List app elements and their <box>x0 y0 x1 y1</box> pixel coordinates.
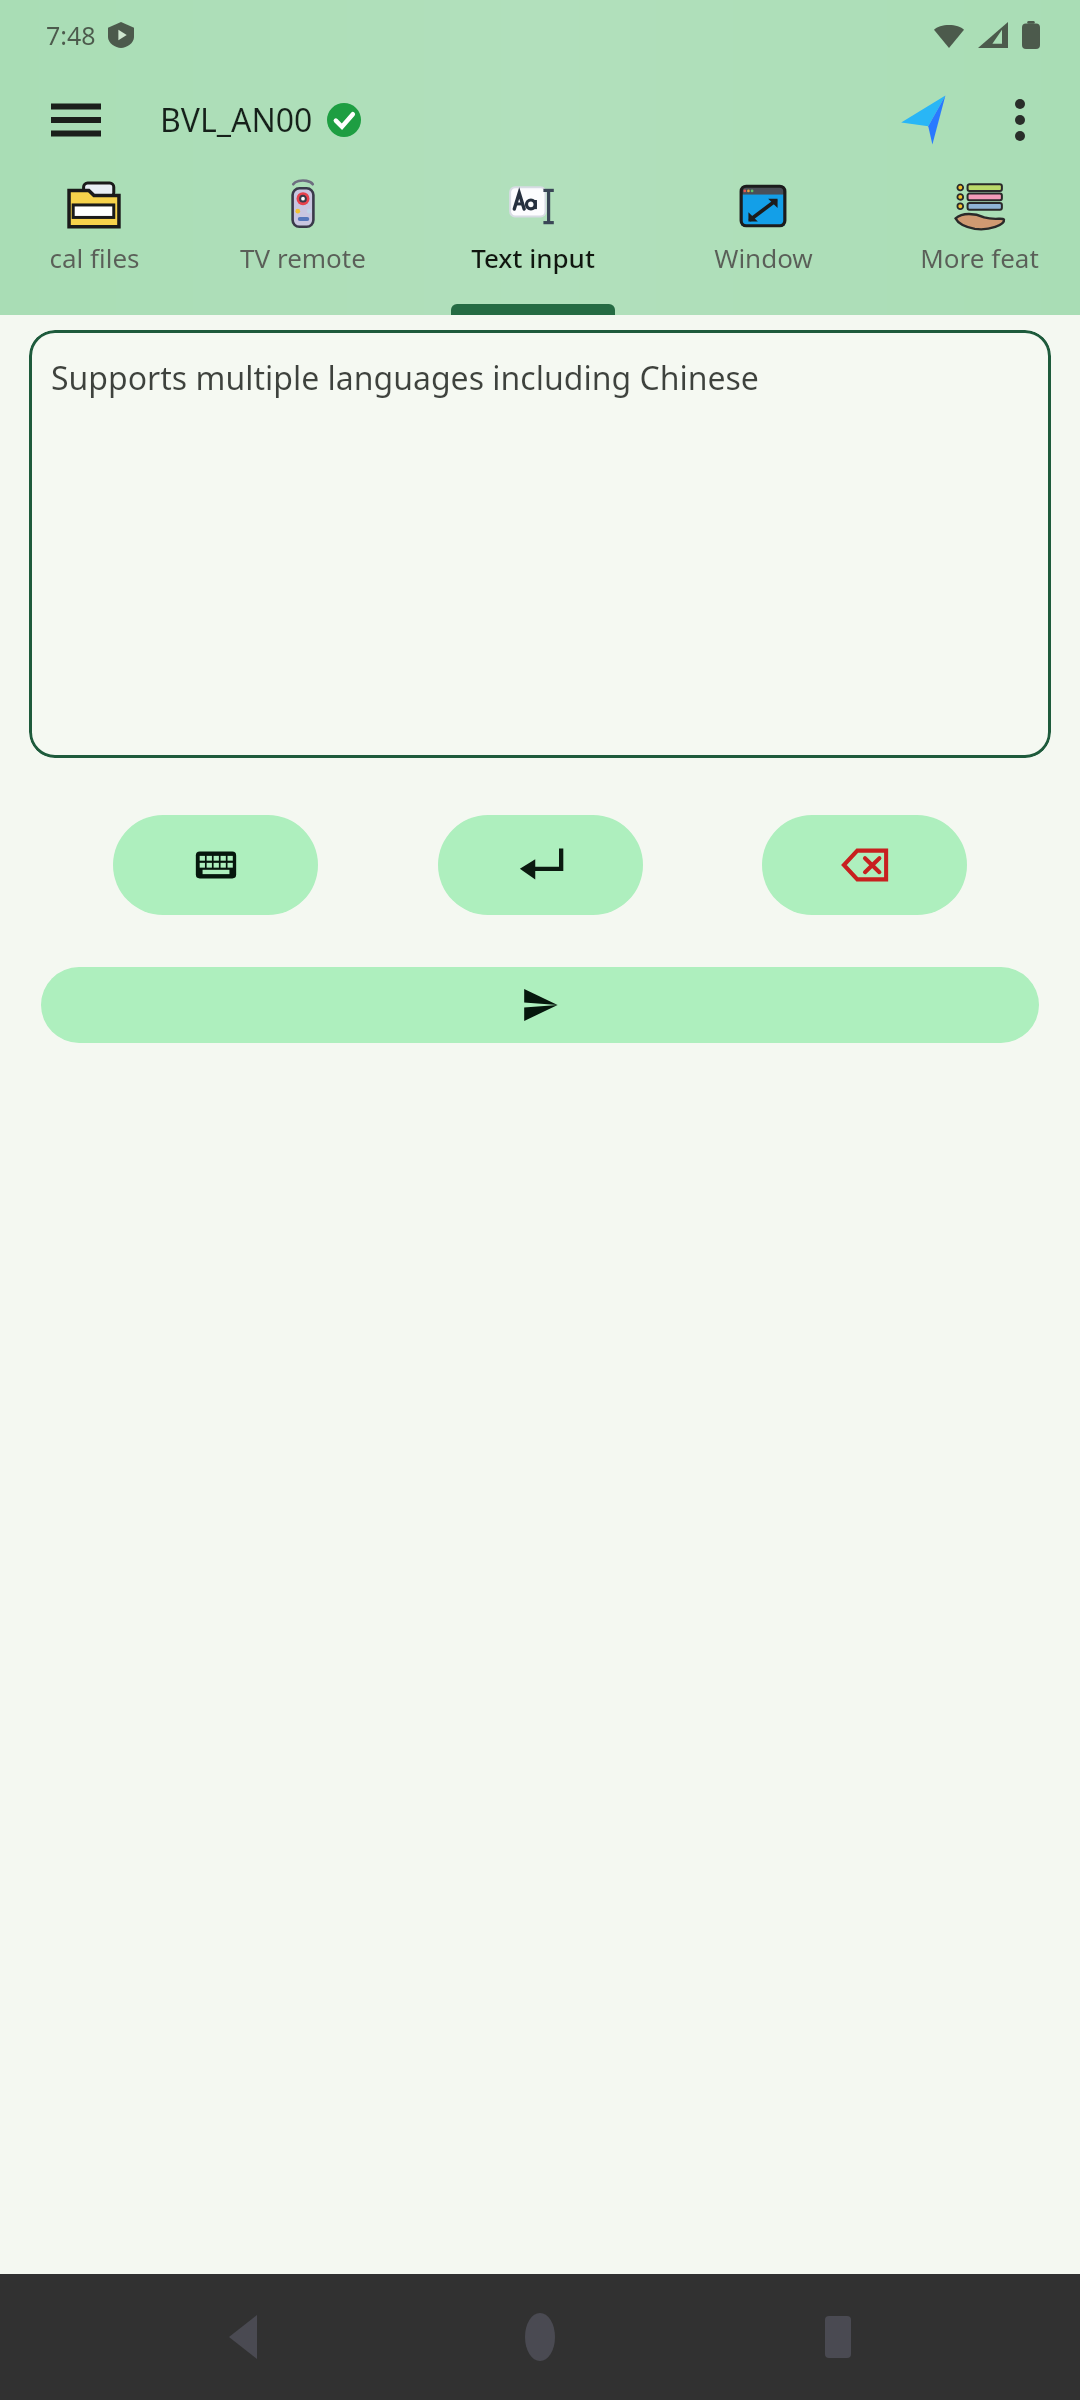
staticText: More feat <box>920 240 1039 275</box>
button[interactable]: Navigate <box>884 82 960 158</box>
staticText: BVL_AN00 <box>160 98 313 142</box>
button[interactable]: Recents <box>783 2282 893 2392</box>
staticText: TV remote <box>240 240 366 275</box>
button[interactable]: Text input <box>418 170 648 315</box>
button[interactable]: More feat <box>878 170 1080 315</box>
staticText: Supports multiple languages including Ch… <box>51 356 759 400</box>
button[interactable]: Backspace <box>762 815 967 915</box>
staticText: Window <box>714 240 813 275</box>
staticText: Text input <box>471 240 595 275</box>
staticText: 7:48 <box>46 18 96 52</box>
button[interactable]: Enter <box>438 815 643 915</box>
button[interactable]: Send <box>41 967 1039 1043</box>
button[interactable]: More options <box>982 82 1058 158</box>
button[interactable]: TV remote <box>188 170 418 315</box>
button[interactable]: Home <box>485 2282 595 2392</box>
button[interactable]: Back <box>188 2282 298 2392</box>
button[interactable]: Menu <box>38 82 114 158</box>
staticText: cal files <box>49 240 140 275</box>
button[interactable]: Supports multiple languages including Ch… <box>29 330 1051 758</box>
button[interactable]: cal files <box>0 170 188 315</box>
button[interactable]: Window <box>648 170 878 315</box>
button[interactable]: Keyboard <box>113 815 318 915</box>
